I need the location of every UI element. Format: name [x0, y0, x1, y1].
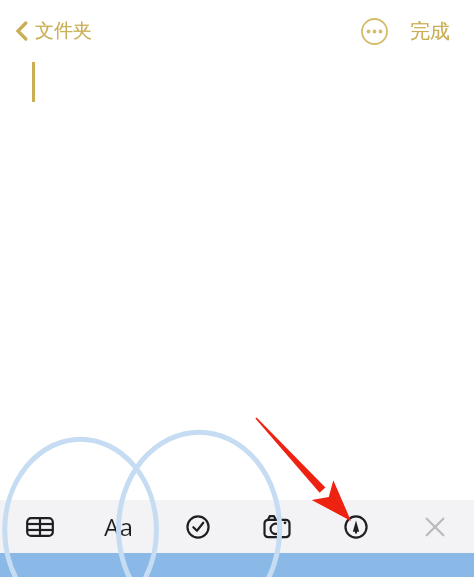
- button[interactable]: Text format: [79, 500, 158, 553]
- button[interactable]: Checklist: [158, 500, 237, 553]
- button[interactable]: Close: [395, 500, 474, 553]
- staticText: Aa: [104, 510, 133, 543]
- button[interactable]: Markup: [316, 500, 395, 553]
- staticText: 文件夹: [35, 19, 92, 43]
- button[interactable]: Table: [0, 500, 79, 553]
- button[interactable]: More options: [354, 11, 394, 51]
- staticText: 完成: [410, 19, 450, 44]
- button[interactable]: 文件夹: [12, 13, 96, 49]
- button[interactable]: Camera: [237, 500, 316, 553]
- button[interactable]: 完成: [400, 13, 460, 50]
